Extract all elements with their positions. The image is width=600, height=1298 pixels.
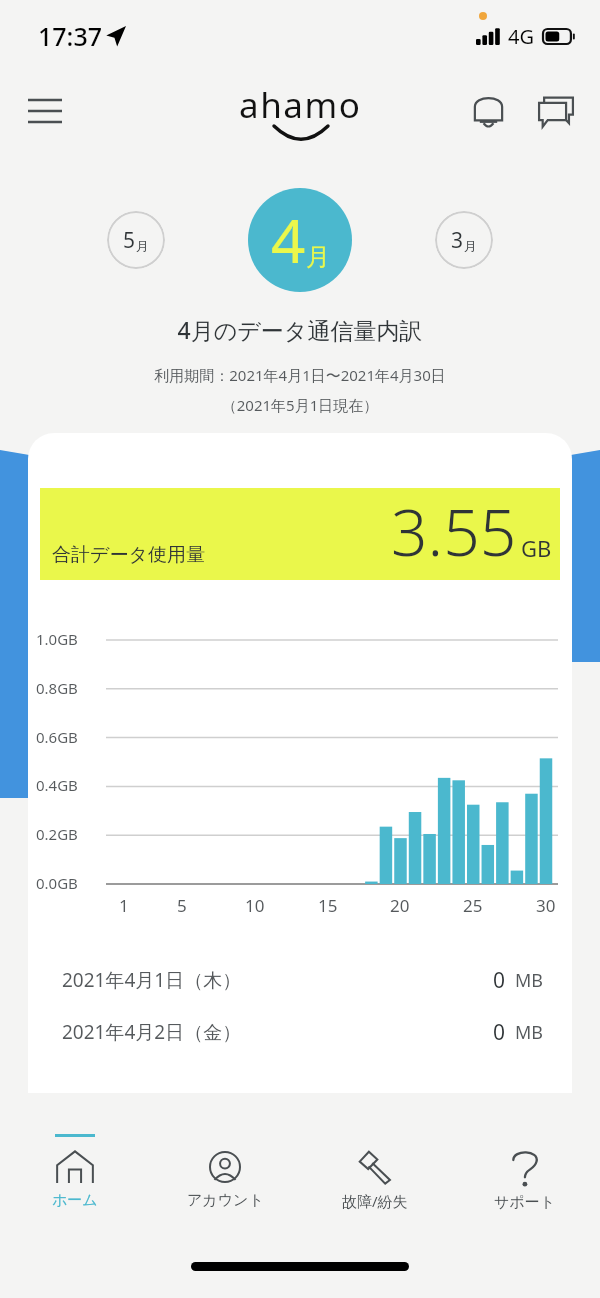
staticText: 2021年4月2日（金） xyxy=(62,1019,242,1045)
staticText: MB xyxy=(515,968,544,993)
button[interactable]: Menu xyxy=(18,84,72,138)
button[interactable]: 5 xyxy=(107,211,165,269)
staticText: ホーム xyxy=(52,1191,98,1210)
staticText: 合計データ使用量 xyxy=(52,543,205,567)
button[interactable]: 3 xyxy=(435,211,493,269)
staticText: 0.4GB xyxy=(36,775,78,795)
staticText: 利用期間：2021年4月1日〜2021年4月30日 xyxy=(0,365,600,385)
button[interactable]: 故障/紛失 xyxy=(300,1146,450,1215)
staticText: 3 xyxy=(451,226,464,255)
button[interactable]: ホーム xyxy=(0,1146,150,1214)
staticText: 5 xyxy=(177,894,187,917)
button[interactable]: アカウント xyxy=(150,1146,300,1214)
staticText: 10 xyxy=(245,894,265,917)
staticText: 月 xyxy=(464,238,477,254)
staticText: 0 xyxy=(493,966,506,995)
staticText: 0.0GB xyxy=(36,873,78,893)
staticText: MB xyxy=(515,1020,544,1045)
staticText: 0.8GB xyxy=(36,678,78,698)
staticText: ahamo xyxy=(239,81,362,129)
staticText: 25 xyxy=(463,894,483,917)
button[interactable]: サポート xyxy=(450,1146,600,1216)
staticText: 故障/紛失 xyxy=(342,1191,408,1211)
staticText: 1 xyxy=(119,894,129,917)
staticText: 4G xyxy=(508,23,534,50)
button[interactable]: Notifications xyxy=(460,83,516,139)
staticText: 3.55 xyxy=(391,488,517,574)
staticText: 5 xyxy=(123,226,136,255)
staticText: 1.0GB xyxy=(36,629,78,649)
staticText: 0.2GB xyxy=(36,824,78,844)
button[interactable]: 4 xyxy=(248,188,352,292)
staticText: 0 xyxy=(493,1018,506,1047)
staticText: アカウント xyxy=(187,1191,264,1210)
button[interactable]: 2021年4月1日（木） xyxy=(62,954,544,1006)
staticText: GB xyxy=(521,533,552,563)
staticText: （2021年5月1日現在） xyxy=(0,395,600,415)
staticText: サポート xyxy=(494,1193,556,1212)
staticText: 20 xyxy=(390,894,410,917)
staticText: 17:37 xyxy=(38,19,103,53)
staticText: 0.6GB xyxy=(36,727,78,747)
button[interactable]: Chat support xyxy=(528,83,584,139)
staticText: 4月のデータ通信量内訳 xyxy=(0,314,600,345)
staticText: 月 xyxy=(136,238,149,254)
staticText: 4 xyxy=(271,199,306,281)
staticText: 15 xyxy=(318,894,338,917)
staticText: 月 xyxy=(306,242,330,272)
staticText: 2021年4月1日（木） xyxy=(62,967,242,993)
staticText: 30 xyxy=(536,894,556,917)
button[interactable]: 2021年4月2日（金） xyxy=(62,1006,544,1058)
